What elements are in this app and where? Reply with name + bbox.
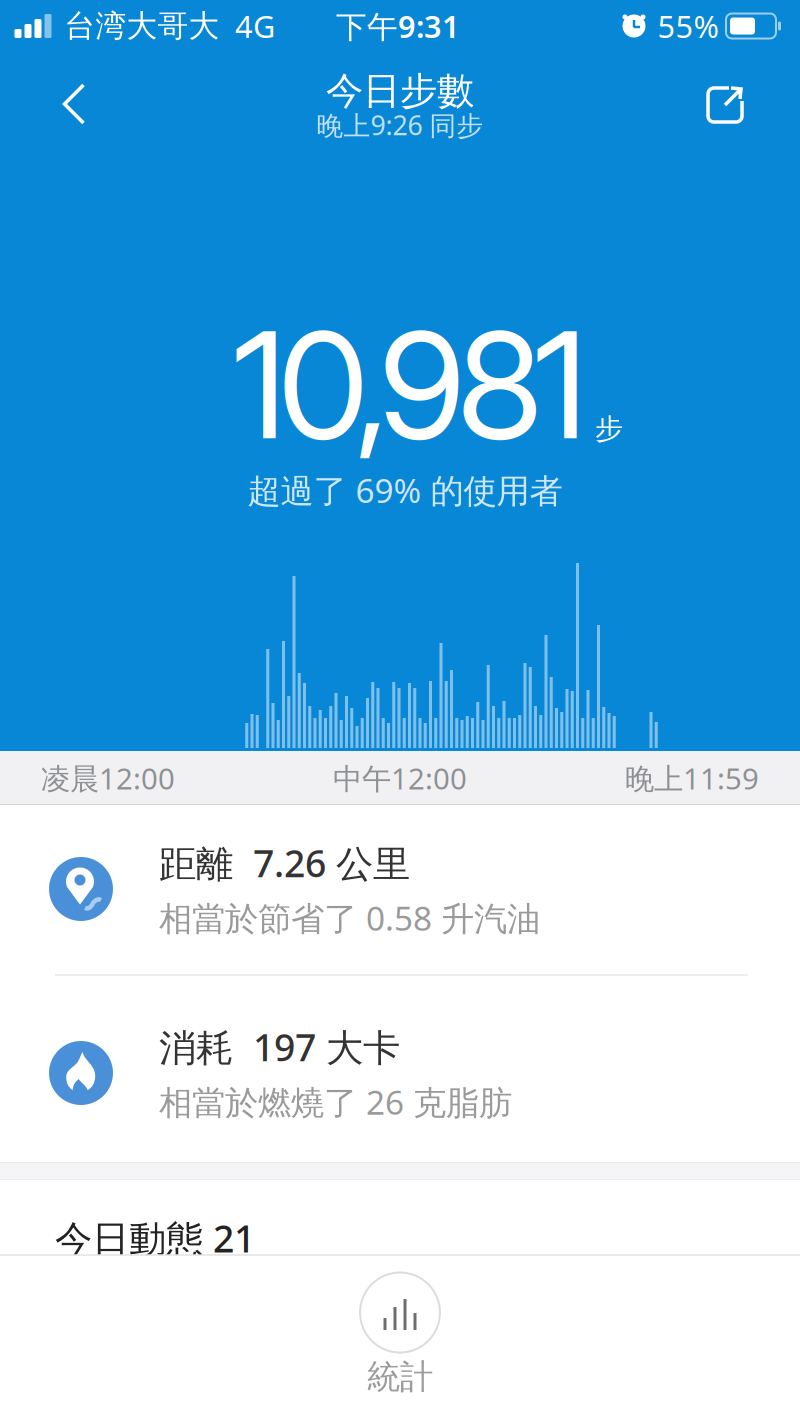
button[interactable] bbox=[64, 85, 83, 123]
staticText: 4G bbox=[235, 6, 275, 46]
staticText: 中午12:00 bbox=[333, 758, 467, 797]
staticText: 超過了 69% 的使用者 bbox=[247, 468, 562, 512]
staticText: 晚上9:26 同步 bbox=[316, 107, 483, 143]
staticText: 凌晨12:00 bbox=[41, 758, 175, 797]
staticText: 下午9:31 bbox=[336, 6, 460, 46]
button[interactable]: 距離 7.26 公里 bbox=[0, 815, 800, 963]
staticText: 今日步數 bbox=[326, 68, 474, 114]
staticText: 步 bbox=[595, 412, 623, 446]
staticText: 統計 bbox=[367, 1356, 433, 1397]
staticText: 台湾大哥大 bbox=[64, 7, 219, 45]
staticText: 消耗 197 大卡 bbox=[159, 1022, 400, 1072]
staticText: 距離 7.26 公里 bbox=[159, 838, 410, 888]
staticText: 晚上11:59 bbox=[625, 758, 759, 797]
button[interactable] bbox=[708, 88, 742, 122]
staticText: 10,981 bbox=[233, 296, 587, 474]
button[interactable]: 消耗 197 大卡 bbox=[0, 999, 800, 1147]
staticText: 相當於燃燒了 26 克脂肪 bbox=[159, 1080, 512, 1124]
staticText: 今日動態 21 bbox=[55, 1213, 255, 1263]
staticText: 55% bbox=[657, 6, 718, 46]
staticText: 相當於節省了 0.58 升汽油 bbox=[159, 896, 540, 940]
button[interactable]: 統計 bbox=[360, 1272, 440, 1397]
